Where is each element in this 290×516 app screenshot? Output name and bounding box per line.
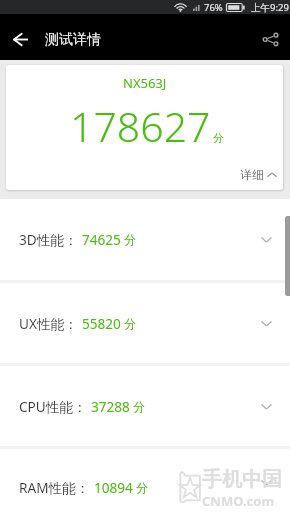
staticText: 测试详情 xyxy=(45,31,101,49)
staticText: 手机中国 xyxy=(202,467,282,492)
button[interactable]: 3D性能： xyxy=(0,199,290,280)
staticText: 详细 xyxy=(240,167,264,182)
staticText: 10894 xyxy=(94,478,133,497)
staticText: 分 xyxy=(213,131,224,145)
staticText: 76% xyxy=(204,1,223,14)
button[interactable]: UX性能： xyxy=(0,283,290,363)
button[interactable]: NX563J xyxy=(6,65,283,190)
button[interactable]: 详细 xyxy=(240,167,277,182)
staticText: 37288 xyxy=(91,397,130,416)
staticText: 74625 xyxy=(82,230,121,249)
staticText: 3D性能： xyxy=(19,230,78,249)
staticText: 上午9:29 xyxy=(251,1,289,14)
staticText: 分 xyxy=(133,399,145,414)
staticText: 178627 xyxy=(70,98,211,154)
button[interactable]: CPU性能： xyxy=(0,366,290,446)
staticText: 分 xyxy=(124,316,136,331)
staticText: 分 xyxy=(136,480,148,495)
staticText: RAM性能： xyxy=(19,478,90,497)
button[interactable]: Share xyxy=(250,19,290,60)
staticText: UX性能： xyxy=(19,314,78,333)
staticText: CPU性能： xyxy=(19,397,87,416)
staticText: 分 xyxy=(124,232,136,247)
staticText: CNMO.com xyxy=(202,492,275,510)
button[interactable]: RAM性能： xyxy=(0,449,290,516)
staticText: NX563J xyxy=(123,74,167,92)
staticText: 55820 xyxy=(82,314,121,333)
button[interactable]: Back xyxy=(0,19,40,60)
